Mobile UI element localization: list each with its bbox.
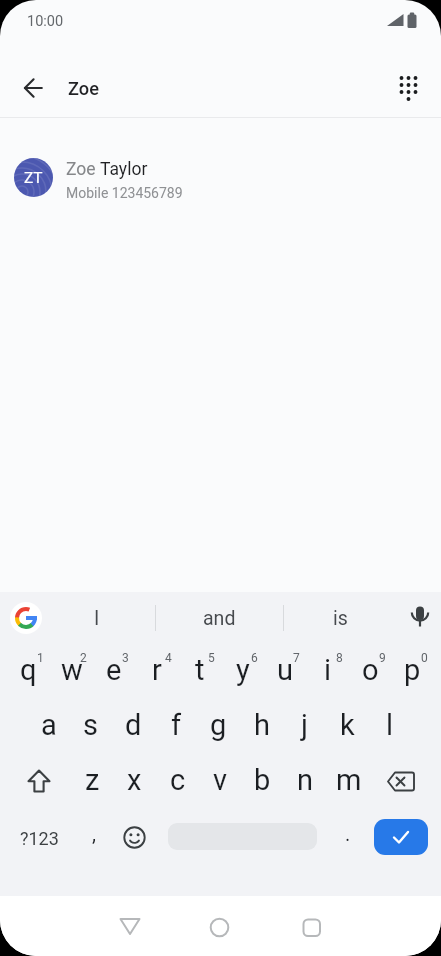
staticText: , (92, 822, 96, 845)
staticText: u (277, 653, 293, 687)
staticText: g (210, 708, 227, 742)
button[interactable]: z (71, 752, 114, 807)
staticText: t (195, 653, 205, 687)
staticText: l (386, 708, 394, 742)
staticText: x (127, 763, 142, 797)
staticText: f (171, 708, 182, 742)
button[interactable]: q (7, 642, 50, 697)
staticText: i (324, 653, 332, 687)
staticText: p (404, 653, 421, 687)
staticText: n (297, 763, 314, 797)
button[interactable]: r (135, 642, 178, 697)
button[interactable] (290, 904, 334, 948)
button[interactable]: c (156, 752, 199, 807)
button[interactable] (392, 70, 426, 106)
staticText: s (83, 708, 98, 742)
staticText: 8 (336, 651, 343, 665)
button[interactable]: e (92, 642, 135, 697)
staticText: 2 (80, 651, 87, 665)
staticText: Mobile 123456789 (66, 185, 183, 201)
button[interactable]: b (241, 752, 284, 807)
button[interactable] (7, 754, 70, 809)
button[interactable]: and (164, 596, 274, 640)
button[interactable] (374, 819, 428, 855)
button[interactable]: o (349, 642, 392, 697)
staticText: o (362, 653, 379, 687)
button[interactable]: l (368, 697, 411, 752)
button[interactable] (198, 904, 242, 948)
staticText: e (106, 653, 122, 687)
button[interactable] (370, 754, 434, 809)
button[interactable]: g (197, 697, 240, 752)
staticText: and (203, 607, 236, 630)
staticText: 3 (122, 651, 129, 665)
staticText: k (340, 708, 355, 742)
staticText: h (254, 708, 270, 742)
staticText: z (85, 763, 100, 797)
staticText: 7 (293, 651, 300, 665)
button[interactable]: x (113, 752, 156, 807)
staticText: is (333, 607, 348, 630)
staticText: 5 (208, 651, 215, 665)
staticText: y (236, 653, 250, 687)
button[interactable] (404, 601, 436, 635)
button[interactable]: , (39, 811, 149, 855)
staticText: 6 (251, 651, 258, 665)
button[interactable]: I (42, 596, 152, 640)
button[interactable]: y (221, 642, 264, 697)
staticText: w (61, 653, 83, 687)
button[interactable] (10, 602, 42, 634)
staticText: v (213, 763, 228, 797)
staticText: 1 (37, 651, 44, 665)
staticText: 9 (379, 651, 386, 665)
staticText: b (254, 763, 271, 797)
button[interactable]: w (50, 642, 93, 697)
button[interactable]: p (391, 642, 434, 697)
button[interactable]: s (69, 697, 112, 752)
button[interactable]: . (293, 811, 403, 855)
button[interactable]: u (263, 642, 306, 697)
staticText: . (345, 822, 351, 845)
staticText: 10:00 (27, 13, 64, 30)
staticText: 4 (165, 651, 172, 665)
staticText: j (301, 708, 308, 742)
button[interactable]: h (240, 697, 283, 752)
button[interactable]: j (283, 697, 326, 752)
button[interactable]: is (285, 596, 395, 640)
button[interactable]: i (306, 642, 349, 697)
staticText: m (336, 763, 362, 797)
button[interactable]: v (199, 752, 242, 807)
button[interactable]: ZT (0, 130, 441, 210)
button[interactable] (108, 904, 152, 948)
button[interactable]: t (178, 642, 221, 697)
button[interactable]: n (284, 752, 327, 807)
button[interactable]: f (155, 697, 198, 752)
staticText: d (125, 708, 142, 742)
button[interactable]: ?123 (0, 816, 94, 860)
staticText: Zoe (68, 78, 99, 99)
button[interactable]: k (326, 697, 369, 752)
button[interactable]: d (112, 697, 155, 752)
button[interactable] (113, 810, 156, 865)
staticText: I (94, 607, 100, 630)
staticText: a (41, 708, 57, 742)
staticText: r (152, 653, 162, 687)
staticText: ZT (24, 169, 43, 187)
button[interactable]: a (27, 697, 70, 752)
button[interactable]: m (327, 752, 370, 807)
staticText: ?123 (20, 828, 59, 849)
staticText: Zoe (66, 159, 96, 180)
staticText: 0 (421, 651, 428, 665)
staticText: q (20, 653, 37, 687)
staticText: c (170, 763, 186, 797)
staticText: Taylor (96, 159, 148, 180)
button[interactable] (14, 72, 54, 104)
